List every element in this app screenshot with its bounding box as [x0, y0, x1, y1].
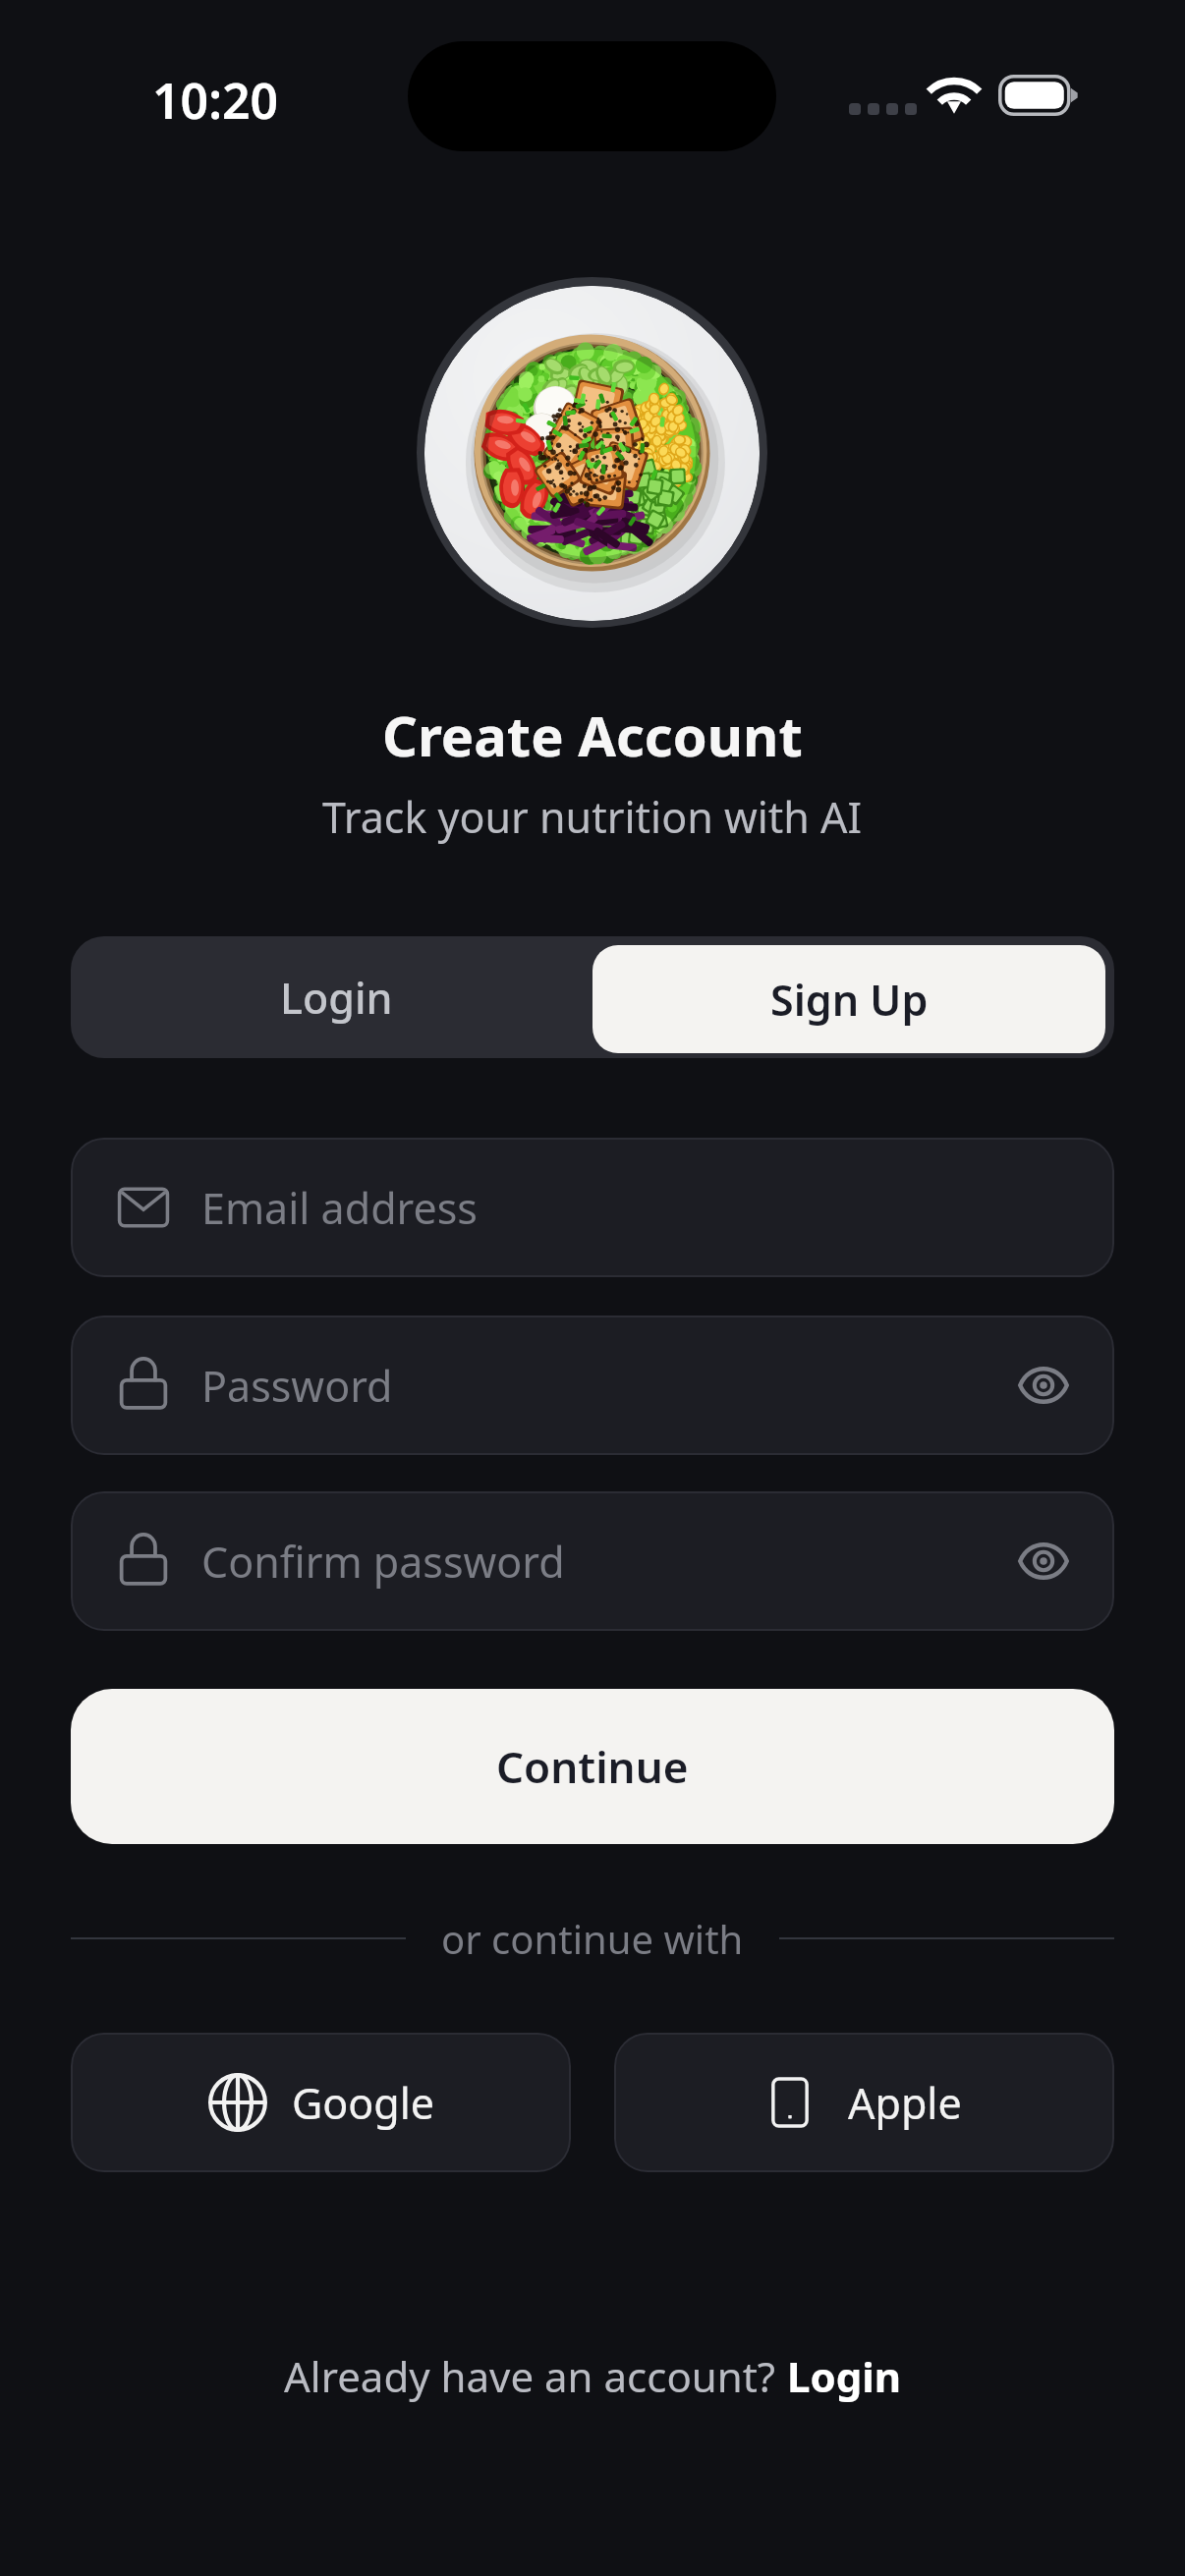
staticText: 10:20: [152, 67, 279, 134]
staticText: Track your nutrition with AI: [322, 788, 863, 846]
button[interactable]: Email address: [71, 1138, 1114, 1277]
button[interactable]: Already have an account?: [284, 2348, 902, 2404]
button[interactable]: Apple: [614, 2033, 1114, 2172]
staticText: Apple: [848, 2074, 962, 2132]
staticText: Sign Up: [770, 971, 929, 1029]
staticText: Continue: [496, 1737, 689, 1796]
staticText: Create Account: [382, 698, 803, 772]
staticText: Login: [280, 969, 393, 1027]
staticText: Google: [292, 2074, 435, 2132]
staticText: Login: [787, 2348, 902, 2404]
staticText: Already have an account?: [284, 2348, 787, 2404]
button[interactable]: Login: [71, 936, 592, 1058]
button[interactable]: Confirm password: [71, 1491, 1114, 1631]
button[interactable]: Password: [71, 1316, 1114, 1455]
button[interactable]: Show password: [1018, 1360, 1069, 1411]
staticText: Email address: [201, 1179, 478, 1237]
button[interactable]: Show password: [1018, 1536, 1069, 1587]
button[interactable]: Continue: [71, 1689, 1114, 1844]
staticText: Confirm password: [201, 1533, 565, 1591]
button[interactable]: Sign Up: [592, 945, 1105, 1053]
staticText: Password: [201, 1357, 393, 1415]
staticText: or continue with: [441, 1912, 744, 1965]
button[interactable]: Google: [71, 2033, 571, 2172]
